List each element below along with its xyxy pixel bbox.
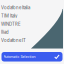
staticText: Vodafone IT [1,38,26,43]
button[interactable]: Iliad [1,28,64,36]
staticText: Automatic Selection [3,55,35,59]
button[interactable]: WINDTRE [1,20,64,28]
button[interactable]: Vodafone IT [1,36,64,45]
button[interactable]: TIM Italy [1,12,64,20]
staticText: Iliad [1,30,9,35]
staticText: Vodafone Italia [1,5,30,10]
staticText: WINDTRE [1,21,21,27]
staticText: TIM Italy [1,13,17,18]
button[interactable]: Vodafone Italia [1,4,64,12]
button[interactable]: Automatic Selection [1,52,62,61]
